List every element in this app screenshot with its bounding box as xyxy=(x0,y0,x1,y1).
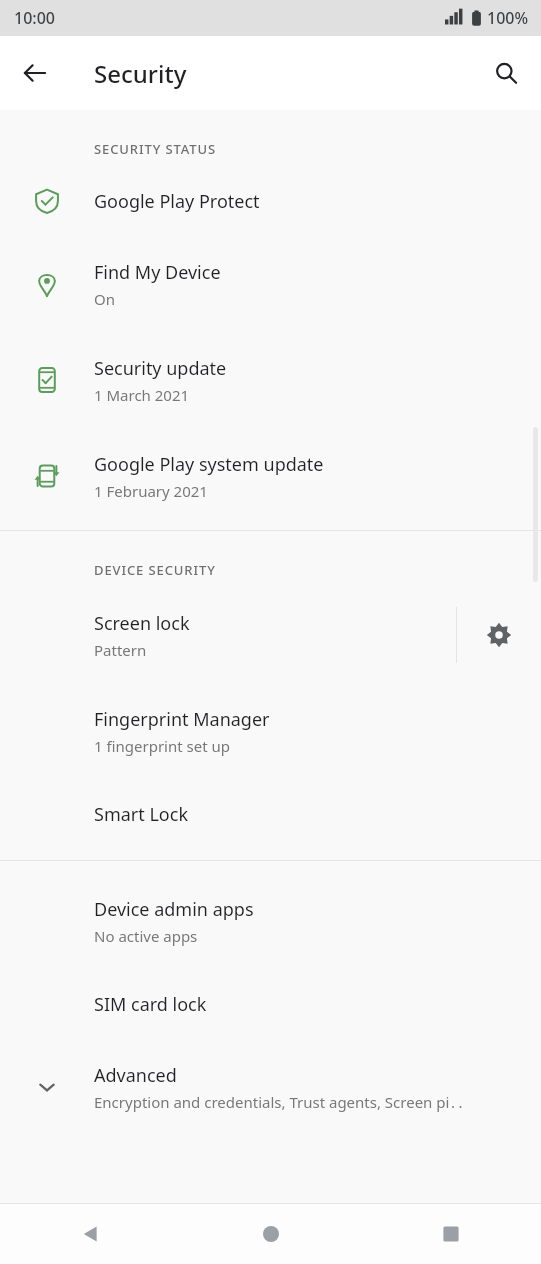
staticText: No active apps xyxy=(94,926,198,946)
staticText: 100% xyxy=(487,7,529,29)
button[interactable]: Find My Device xyxy=(0,236,541,332)
staticText: Encryption and credentials, Trust agents… xyxy=(94,1092,465,1112)
button[interactable]: Google Play system update xyxy=(0,428,541,524)
button[interactable]: Screen lock xyxy=(0,587,456,683)
staticText: 1 fingerprint set up xyxy=(94,736,230,756)
staticText: Device admin apps xyxy=(94,897,254,922)
button[interactable]: SIM card lock xyxy=(0,969,541,1039)
staticText: DEVICE SECURITY xyxy=(94,561,216,579)
staticText: 10:00 xyxy=(14,7,55,29)
staticText: Pattern xyxy=(94,640,147,660)
staticText: Security update xyxy=(94,356,227,381)
staticText: SECURITY STATUS xyxy=(94,140,217,158)
staticText: 1 February 2021 xyxy=(94,481,208,501)
staticText: Smart Lock xyxy=(94,802,188,827)
button[interactable]: Device admin apps xyxy=(0,873,541,969)
button[interactable]: Home xyxy=(181,1204,361,1264)
button[interactable]: Security update xyxy=(0,332,541,428)
button[interactable]: Back xyxy=(10,48,60,98)
button[interactable]: Fingerprint Manager xyxy=(0,683,541,779)
staticText: On xyxy=(94,289,115,309)
button[interactable]: Recent apps xyxy=(361,1204,541,1264)
staticText: Advanced xyxy=(94,1063,177,1088)
staticText: Find My Device xyxy=(94,260,221,285)
staticText: Fingerprint Manager xyxy=(94,707,270,732)
staticText: Google Play Protect xyxy=(94,189,260,214)
button[interactable]: Advanced xyxy=(0,1039,541,1135)
staticText: 1 March 2021 xyxy=(94,385,190,405)
staticText: Screen lock xyxy=(94,611,190,636)
button[interactable]: Screen lock settings xyxy=(457,587,541,683)
staticText: Security xyxy=(94,57,187,90)
button[interactable]: Google Play Protect xyxy=(0,166,541,236)
staticText: Google Play system update xyxy=(94,452,324,477)
button[interactable]: Back xyxy=(0,1204,181,1264)
button[interactable]: Search xyxy=(481,48,531,98)
button[interactable]: Smart Lock xyxy=(0,779,541,849)
staticText: SIM card lock xyxy=(94,992,207,1017)
